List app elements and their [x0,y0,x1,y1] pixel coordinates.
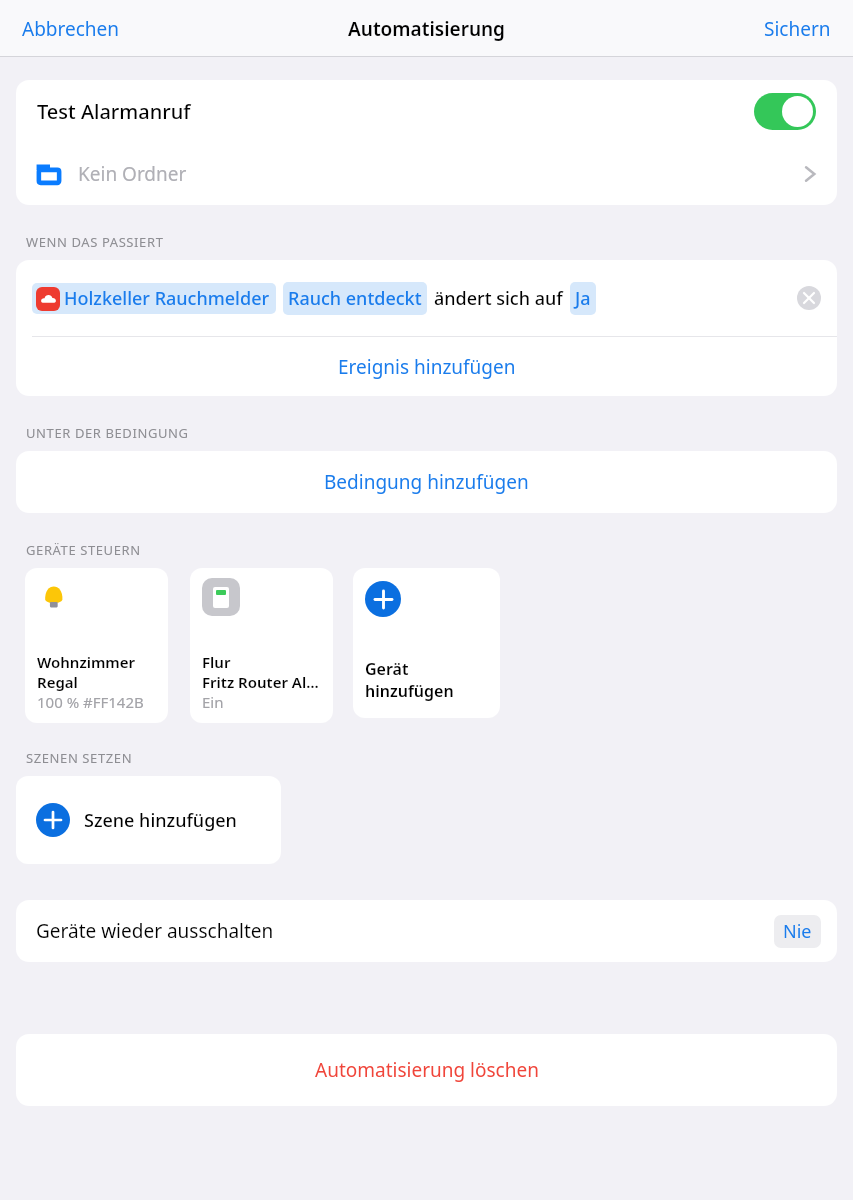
staticText: ändert sich auf [434,286,563,311]
staticText: Wohnzimmer [37,652,135,672]
button[interactable]: Wohnzimmer [25,568,168,723]
staticText: Sichern [764,16,831,42]
staticText: Bedingung hinzufügen [324,469,529,495]
staticText: Holzkeller Rauchmelder [64,286,270,311]
button[interactable]: Holzkeller Rauchmelder [16,260,837,336]
staticText: Abbrechen [22,16,120,42]
button[interactable]: Abbrechen [10,10,132,48]
staticText: 100 % #FF142B [37,692,144,712]
staticText: Geräte wieder ausschalten [36,918,774,944]
staticText: Automatisierung [348,16,506,42]
staticText: WENN DAS PASSIERT [26,233,164,251]
staticText: Flur [202,652,231,672]
button[interactable]: Szene hinzufügen [16,776,281,864]
button[interactable]: Flur [190,568,333,723]
button[interactable]: Automatisierung aktiviert [754,93,816,130]
button[interactable]: Ereignis hinzufügen [16,337,837,396]
button[interactable]: Geräte wieder ausschalten [16,900,837,962]
button[interactable]: Sichern [752,10,843,48]
staticText: Fritz Router Al… [202,672,319,692]
staticText: Kein Ordner [78,161,801,187]
staticText: Ja [575,286,591,311]
button[interactable]: Test Alarmanruf [16,80,837,142]
staticText: hinzufügen [365,680,454,702]
button[interactable]: Ereignis entfernen [797,286,821,310]
staticText: Automatisierung löschen [315,1057,539,1083]
staticText: Ein [202,692,224,712]
staticText: Test Alarmanruf [37,98,754,125]
staticText: UNTER DER BEDINGUNG [26,424,189,442]
staticText: Ereignis hinzufügen [338,354,516,380]
button[interactable]: Gerät [353,568,500,718]
staticText: Gerät [365,658,409,680]
button[interactable]: Kein Ordner [16,142,837,205]
button[interactable]: Automatisierung löschen [16,1034,837,1106]
staticText: Szene hinzufügen [84,808,237,833]
button[interactable]: Bedingung hinzufügen [16,451,837,513]
staticText: Nie [783,919,812,944]
staticText: SZENEN SETZEN [26,749,133,767]
staticText: Regal [37,672,78,692]
staticText: GERÄTE STEUERN [26,541,141,559]
staticText: Rauch entdeckt [288,286,422,311]
